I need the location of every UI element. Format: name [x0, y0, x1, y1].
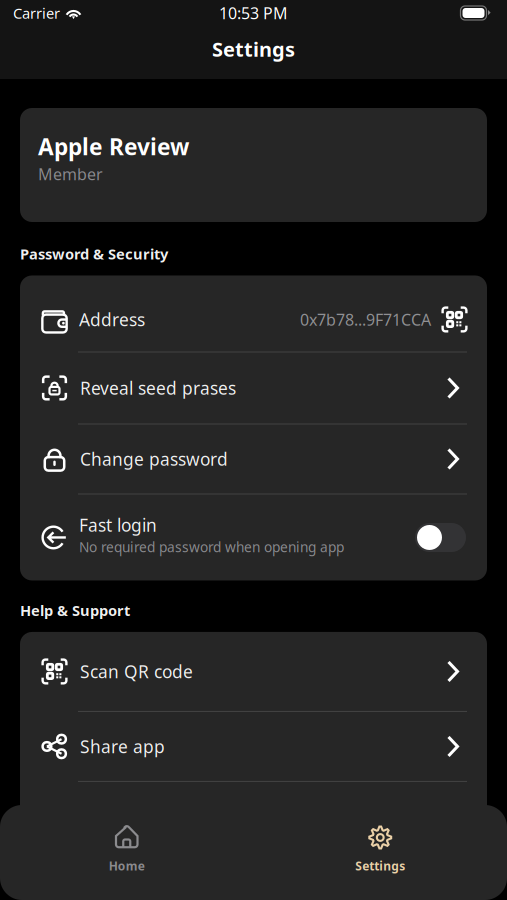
staticText: No required password when opening app	[79, 538, 344, 556]
staticText: Settings	[355, 858, 405, 874]
staticText: Settings	[212, 36, 295, 62]
staticText: 0x7b78...9F71CCA	[300, 309, 431, 330]
staticText: Address	[79, 308, 145, 331]
button[interactable]: Share app	[20, 712, 487, 781]
staticText: Carrier	[13, 3, 60, 23]
staticText: Scan QR code	[80, 660, 193, 683]
button[interactable]: Home	[0, 805, 253, 900]
staticText: Password & Security	[20, 244, 168, 263]
button[interactable]: Settings	[253, 805, 507, 900]
staticText: 10:53 PM	[219, 2, 288, 24]
staticText: Reveal seed prases	[80, 376, 236, 399]
staticText: Fast login	[79, 514, 157, 537]
staticText: Help & Support	[20, 600, 130, 620]
button[interactable]: Fast login	[20, 494, 487, 580]
staticText: Member	[38, 163, 103, 185]
button[interactable]: Change password	[20, 424, 487, 493]
button[interactable]: Address	[20, 275, 487, 351]
button[interactable]: Reveal seed prases	[20, 352, 487, 423]
staticText: Home	[109, 858, 145, 874]
staticText: Change password	[80, 447, 228, 470]
staticText: Apple Review	[38, 131, 189, 161]
staticText: Share app	[80, 735, 165, 758]
button[interactable]: Scan QR code	[20, 632, 487, 711]
